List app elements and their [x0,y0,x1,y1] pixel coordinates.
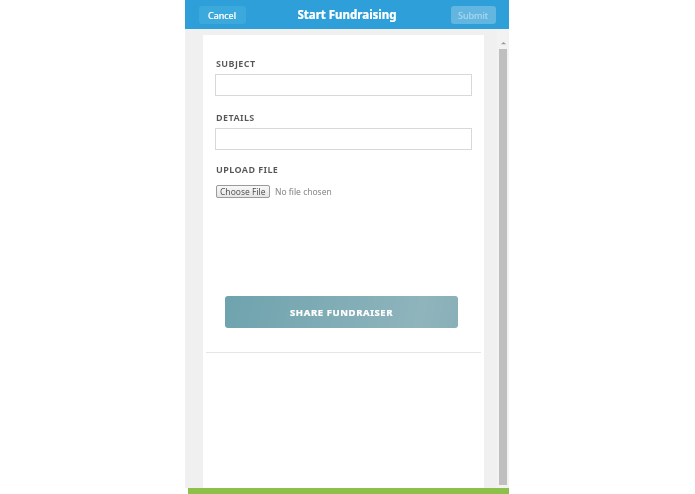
button[interactable]: Cancel [199,6,246,24]
staticText: No file chosen [275,186,332,198]
staticText: Submit [458,9,489,21]
button[interactable] [215,128,472,150]
button[interactable]: SHARE FUNDRAISER [225,296,458,328]
staticText: Cancel [208,9,237,21]
staticText: SHARE FUNDRAISER [290,306,394,319]
button[interactable]: Submit [451,6,496,24]
button[interactable]: Choose File [216,185,332,198]
staticText: Start Fundraising [297,7,397,23]
staticText: UPLOAD FILE [216,163,279,175]
staticText: Choose File [220,186,266,198]
button[interactable] [215,74,472,96]
staticText: DETAILS [216,111,255,123]
staticText: SUBJECT [216,57,256,69]
other: Scroll up [500,40,507,47]
